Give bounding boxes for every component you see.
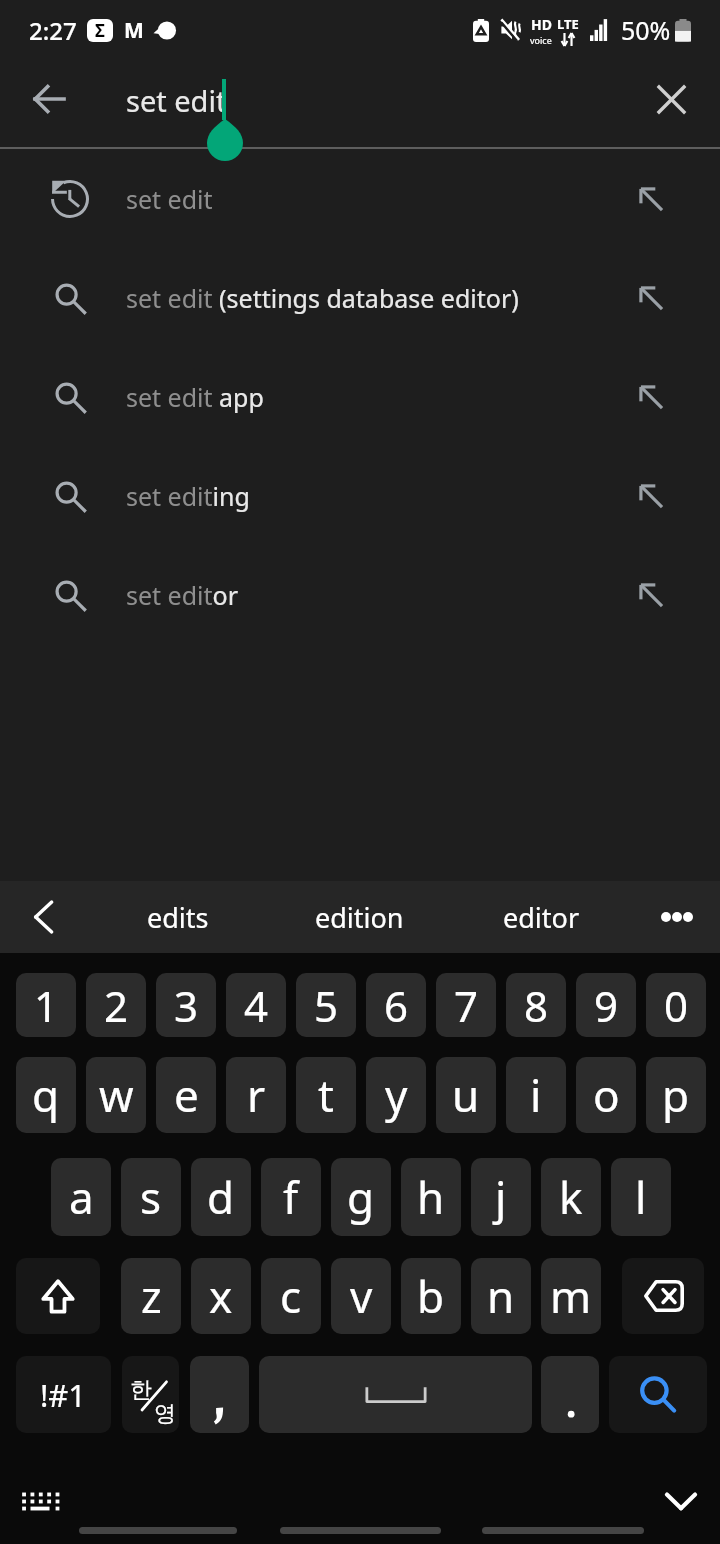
staticText: set edit app bbox=[126, 380, 264, 414]
button[interactable]: 9 bbox=[576, 973, 636, 1037]
button[interactable]: 8 bbox=[506, 973, 566, 1037]
button[interactable]: o bbox=[576, 1057, 636, 1133]
staticText: 7 bbox=[454, 977, 479, 1034]
button[interactable]: 7 bbox=[436, 973, 496, 1037]
button[interactable]: 2 bbox=[86, 973, 146, 1037]
staticText: c bbox=[280, 1266, 302, 1326]
staticText: v bbox=[350, 1266, 373, 1326]
staticText: set edit bbox=[126, 81, 227, 120]
staticText: d bbox=[207, 1167, 235, 1227]
staticText: b bbox=[417, 1266, 445, 1326]
staticText: 4 bbox=[244, 977, 269, 1034]
button[interactable]: c bbox=[261, 1258, 321, 1334]
staticText: 9 bbox=[594, 977, 619, 1034]
staticText: s bbox=[140, 1167, 162, 1227]
button[interactable]: k bbox=[541, 1158, 601, 1236]
staticText: n bbox=[487, 1266, 515, 1326]
button[interactable]: set edit (settings database editor) bbox=[0, 248, 720, 347]
button[interactable]: set editing bbox=[0, 446, 720, 545]
staticText: 50% bbox=[621, 13, 671, 47]
staticText: 1 bbox=[34, 977, 59, 1034]
button[interactable]: 4 bbox=[226, 973, 286, 1037]
button[interactable]: i bbox=[506, 1057, 566, 1133]
button[interactable]: a bbox=[51, 1158, 111, 1236]
button[interactable]: t bbox=[296, 1057, 356, 1133]
staticText: h bbox=[417, 1167, 445, 1227]
button[interactable]: n bbox=[471, 1258, 531, 1334]
staticText: l bbox=[635, 1167, 647, 1227]
button[interactable]: 5 bbox=[296, 973, 356, 1037]
button[interactable]: edits bbox=[88, 881, 268, 953]
button[interactable]: Language bbox=[122, 1356, 179, 1433]
staticText: o bbox=[593, 1065, 620, 1125]
button[interactable]: b bbox=[401, 1258, 461, 1334]
staticText: w bbox=[99, 1065, 134, 1125]
button[interactable]: Space bbox=[259, 1356, 532, 1433]
button[interactable]: y bbox=[366, 1057, 426, 1133]
staticText: g bbox=[347, 1167, 375, 1227]
button[interactable]: f bbox=[261, 1158, 321, 1236]
staticText: 6 bbox=[384, 977, 409, 1034]
staticText: m bbox=[550, 1266, 592, 1326]
button[interactable]: u bbox=[436, 1057, 496, 1133]
staticText: 3 bbox=[174, 977, 199, 1034]
button[interactable]: Period bbox=[541, 1356, 599, 1433]
button[interactable]: s bbox=[121, 1158, 181, 1236]
button[interactable]: e bbox=[156, 1057, 216, 1133]
staticText: set edit bbox=[126, 182, 213, 216]
button[interactable]: j bbox=[471, 1158, 531, 1236]
button[interactable]: Comma bbox=[190, 1356, 249, 1433]
staticText: f bbox=[283, 1167, 299, 1227]
button[interactable]: Previous suggestions bbox=[0, 881, 88, 953]
button[interactable]: x bbox=[191, 1258, 251, 1334]
button[interactable]: q bbox=[16, 1057, 76, 1133]
button[interactable]: Change keyboard bbox=[9, 1479, 71, 1525]
button[interactable]: g bbox=[331, 1158, 391, 1236]
staticText: set editor bbox=[126, 578, 239, 612]
button[interactable]: h bbox=[401, 1158, 461, 1236]
staticText: a bbox=[69, 1167, 94, 1227]
staticText: t bbox=[318, 1065, 334, 1125]
button[interactable]: v bbox=[331, 1258, 391, 1334]
button[interactable]: 6 bbox=[366, 973, 426, 1037]
button[interactable]: d bbox=[191, 1158, 251, 1236]
staticText: z bbox=[141, 1266, 162, 1326]
button[interactable]: !#1 bbox=[16, 1356, 111, 1433]
button[interactable]: m bbox=[541, 1258, 601, 1334]
button[interactable]: Shift bbox=[16, 1258, 100, 1334]
button[interactable]: p bbox=[646, 1057, 706, 1133]
staticText: HD bbox=[531, 15, 552, 34]
staticText: i bbox=[530, 1065, 542, 1125]
button[interactable]: l bbox=[611, 1158, 671, 1236]
button[interactable]: 1 bbox=[16, 973, 76, 1037]
button[interactable]: r bbox=[226, 1057, 286, 1133]
button[interactable]: set editor bbox=[0, 545, 720, 644]
staticText: 8 bbox=[524, 977, 549, 1034]
button[interactable]: edition bbox=[268, 881, 450, 953]
staticText: x bbox=[209, 1266, 233, 1326]
staticText: j bbox=[495, 1167, 507, 1227]
staticText: u bbox=[452, 1065, 480, 1125]
button[interactable]: Clear search bbox=[635, 63, 707, 135]
button[interactable]: set edit bbox=[0, 149, 720, 248]
button[interactable]: w bbox=[86, 1057, 146, 1133]
staticText: edits bbox=[147, 899, 209, 936]
staticText: 5 bbox=[314, 977, 339, 1034]
staticText: set editing bbox=[126, 479, 250, 513]
button[interactable]: More options bbox=[632, 881, 720, 953]
staticText: k bbox=[559, 1167, 583, 1227]
staticText: 영 bbox=[154, 1400, 176, 1428]
button[interactable]: Back bbox=[13, 63, 85, 135]
button[interactable]: Search bbox=[609, 1356, 707, 1433]
staticText: !#1 bbox=[40, 1374, 87, 1416]
button[interactable]: Hide keyboard bbox=[655, 1477, 707, 1525]
staticText: set edit (settings database editor) bbox=[126, 281, 519, 315]
staticText: 한 bbox=[130, 1376, 152, 1404]
button[interactable]: 0 bbox=[646, 973, 706, 1037]
staticText: Σ bbox=[95, 19, 105, 42]
button[interactable]: 3 bbox=[156, 973, 216, 1037]
button[interactable]: z bbox=[121, 1258, 181, 1334]
button[interactable]: Backspace bbox=[622, 1258, 704, 1334]
button[interactable]: editor bbox=[450, 881, 632, 953]
button[interactable]: set edit app bbox=[0, 347, 720, 446]
